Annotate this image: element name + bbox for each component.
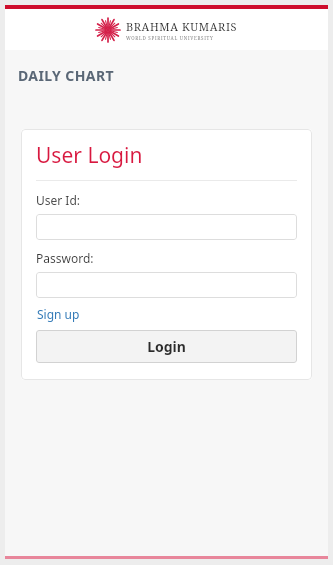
staticText: User Id:: [36, 192, 81, 208]
staticText: Login: [147, 337, 186, 356]
staticText: DAILY CHART: [18, 66, 114, 85]
staticText: Password:: [36, 250, 94, 266]
button[interactable]: Text input field: [36, 272, 297, 298]
staticText: Sign up: [37, 306, 80, 322]
button[interactable]: Sign up: [36, 305, 81, 323]
button[interactable]: Text input field: [36, 214, 297, 240]
button[interactable]: Login: [36, 330, 297, 363]
staticText: BRAHMA KUMARIS: [126, 19, 238, 34]
staticText: WORLD SPIRITUAL UNIVERSITY: [126, 35, 214, 41]
staticText: User Login: [36, 141, 143, 170]
